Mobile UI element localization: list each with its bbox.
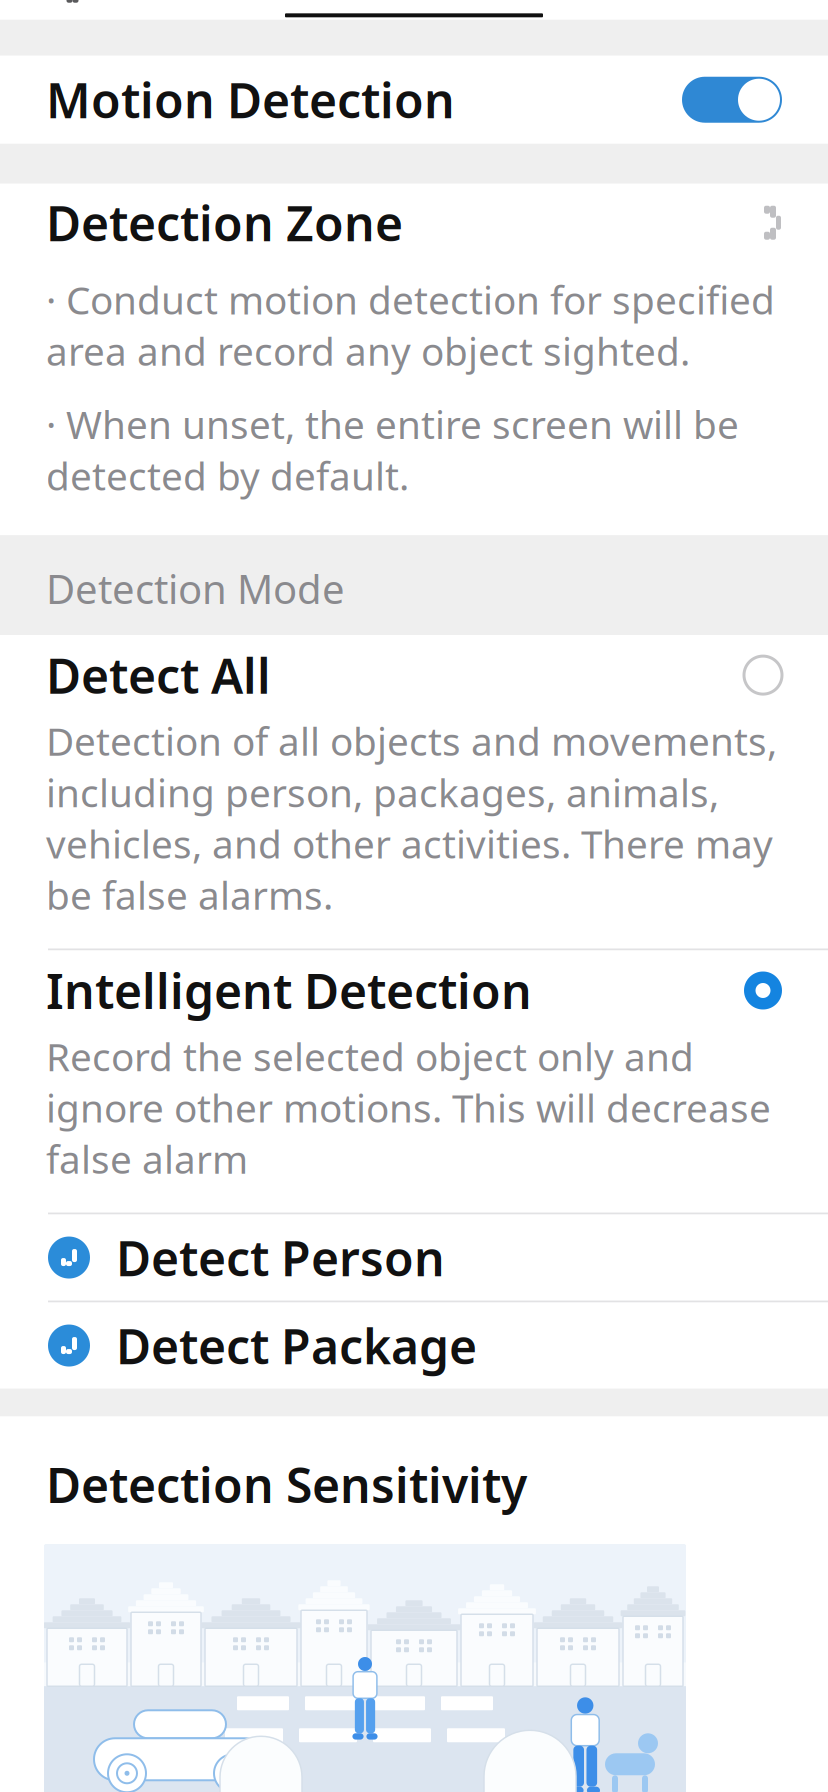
button[interactable]: Detect Person bbox=[0, 1214, 828, 1300]
staticText: Detection Zone bbox=[46, 191, 403, 254]
staticText: Detection Mode bbox=[46, 562, 345, 615]
staticText: · When unset, the entire screen will be … bbox=[46, 398, 739, 501]
staticText: Record the selected object only and igno… bbox=[46, 1030, 771, 1184]
button[interactable]: Motion Detection bbox=[0, 56, 828, 144]
button[interactable]: Detect All bbox=[0, 635, 828, 948]
staticText: Detect All bbox=[46, 643, 271, 707]
staticText: Detect Package bbox=[116, 1314, 477, 1377]
staticText: Motion Detection bbox=[46, 68, 455, 131]
button[interactable]: Back bbox=[30, 0, 110, 19]
staticText: Detection Sensitivity bbox=[46, 1452, 527, 1516]
button[interactable]: Intelligent Detection bbox=[0, 950, 828, 1212]
staticText: Detect Person bbox=[116, 1226, 445, 1289]
staticText: Detection of all objects and movements, … bbox=[46, 715, 777, 920]
staticText: Intelligent Detection bbox=[46, 959, 532, 1022]
staticText: · Conduct motion detection for specified… bbox=[46, 274, 775, 376]
button[interactable]: Detect Package bbox=[0, 1302, 828, 1388]
button[interactable]: Detection Zone bbox=[0, 184, 828, 535]
